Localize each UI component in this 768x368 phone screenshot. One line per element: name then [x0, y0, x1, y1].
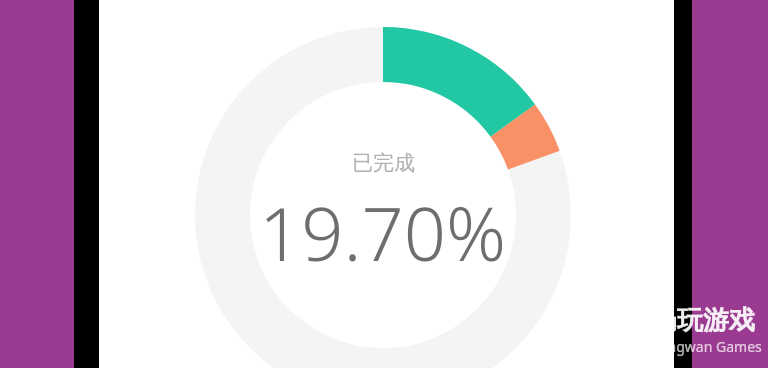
staticText: 19.70% [259, 182, 507, 283]
other: Completion progress 19.70 percent [99, 0, 674, 368]
staticText: 仍玩游戏 [651, 304, 755, 337]
button[interactable] [692, 0, 768, 368]
staticText: 已完成 [352, 150, 415, 176]
staticText: Rengwan Games [651, 337, 762, 356]
